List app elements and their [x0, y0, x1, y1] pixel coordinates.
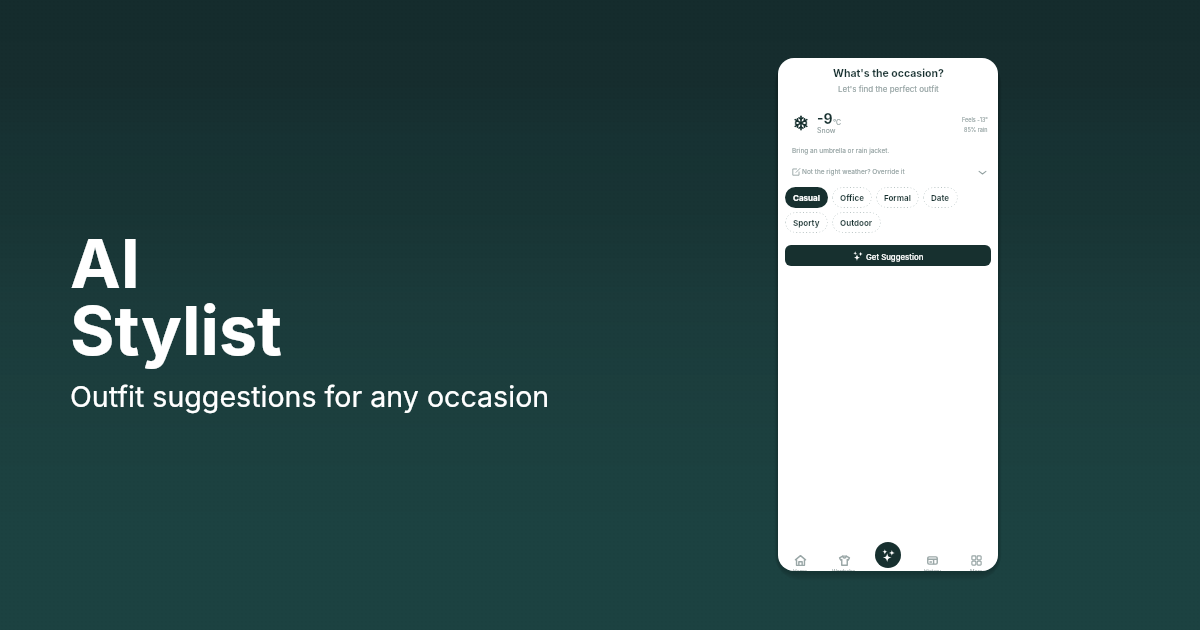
- button[interactable]: Outdoor: [832, 212, 881, 233]
- staticText: °C: [833, 118, 842, 126]
- staticText: 85% rain: [964, 127, 988, 134]
- staticText: Sporty: [793, 218, 820, 228]
- button[interactable]: Office: [832, 187, 872, 208]
- button[interactable]: Not the right weather? Override it: [792, 165, 987, 179]
- staticText: Feels -13°: [962, 117, 988, 124]
- staticText: Casual: [793, 193, 820, 203]
- staticText: Not the right weather? Override it: [802, 168, 905, 176]
- button[interactable]: More: [954, 529, 998, 571]
- staticText: Outdoor: [840, 218, 873, 228]
- button[interactable]: Get Suggestion: [785, 245, 991, 266]
- staticText: Wardrobe: [832, 568, 856, 571]
- staticText: Formal: [884, 193, 911, 203]
- staticText: Get Suggestion: [866, 252, 924, 261]
- staticText: -9: [817, 110, 833, 127]
- button[interactable]: Date: [923, 187, 958, 208]
- button[interactable]: Get AI suggestion: [875, 542, 901, 568]
- staticText: Home: [793, 568, 808, 571]
- button[interactable]: Formal: [876, 187, 919, 208]
- button[interactable]: Wardrobe: [822, 529, 866, 571]
- staticText: Snow: [817, 126, 836, 134]
- button[interactable]: History: [910, 529, 954, 571]
- staticText: Bring an umbrella or rain jacket.: [792, 147, 890, 155]
- staticText: What's the occasion?: [833, 67, 944, 80]
- staticText: History: [924, 568, 941, 571]
- staticText: Let's find the perfect outfit: [838, 84, 939, 94]
- staticText: Outfit suggestions for any occasion: [70, 379, 550, 414]
- staticText: More: [970, 568, 983, 571]
- staticText: Date: [931, 193, 950, 203]
- button[interactable]: Home: [778, 529, 822, 571]
- staticText: Office: [840, 193, 864, 203]
- button[interactable]: Casual: [785, 187, 828, 208]
- staticText: AI Stylist: [70, 222, 282, 372]
- button[interactable]: Sporty: [785, 212, 828, 233]
